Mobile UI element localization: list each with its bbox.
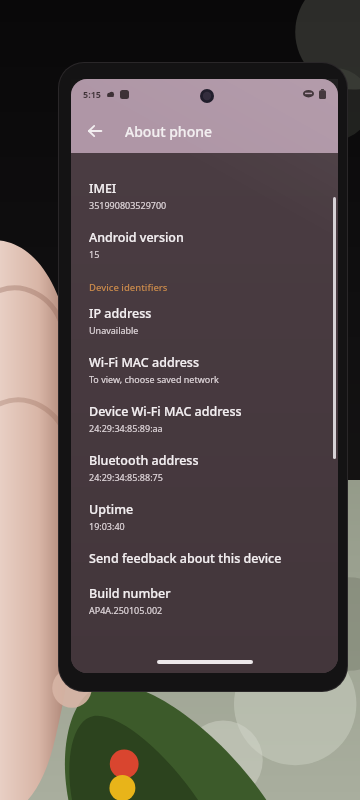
button[interactable]: Wi-Fi MAC address (71, 345, 338, 394)
button[interactable]: Build number (71, 576, 338, 625)
button[interactable]: IMEI (71, 171, 338, 220)
staticText: Wi-Fi MAC address (89, 354, 199, 371)
staticText: 5:15 (83, 88, 101, 100)
button[interactable]: IP address (71, 296, 338, 345)
staticText: About phone (125, 122, 213, 141)
staticText: Device identifiers (89, 281, 168, 294)
staticText: Device Wi-Fi MAC address (89, 403, 242, 420)
staticText: IMEI (89, 180, 117, 197)
staticText: 19:03:40 (89, 520, 125, 532)
staticText: Build number (89, 585, 171, 602)
button[interactable]: Send feedback about this device (71, 541, 338, 576)
staticText: Send feedback about this device (89, 550, 282, 567)
staticText: 15 (89, 248, 100, 260)
staticText: Uptime (89, 501, 134, 518)
staticText: IP address (89, 305, 152, 322)
staticText: Bluetooth address (89, 452, 199, 469)
staticText: To view, choose saved network (89, 373, 219, 385)
staticText: Unavailable (89, 324, 139, 336)
button[interactable]: Android version (71, 220, 338, 269)
staticText: 24:29:34:85:88:75 (89, 471, 163, 483)
button[interactable]: Device Wi-Fi MAC address (71, 394, 338, 443)
staticText: AP4A.250105.002 (89, 604, 163, 616)
staticText: 24:29:34:85:89:aa (89, 422, 163, 434)
button[interactable]: Uptime (71, 492, 338, 541)
staticText: Android version (89, 229, 184, 246)
button[interactable]: Bluetooth address (71, 443, 338, 492)
staticText: 351990803529700 (89, 199, 167, 211)
button[interactable]: Back (77, 113, 113, 149)
